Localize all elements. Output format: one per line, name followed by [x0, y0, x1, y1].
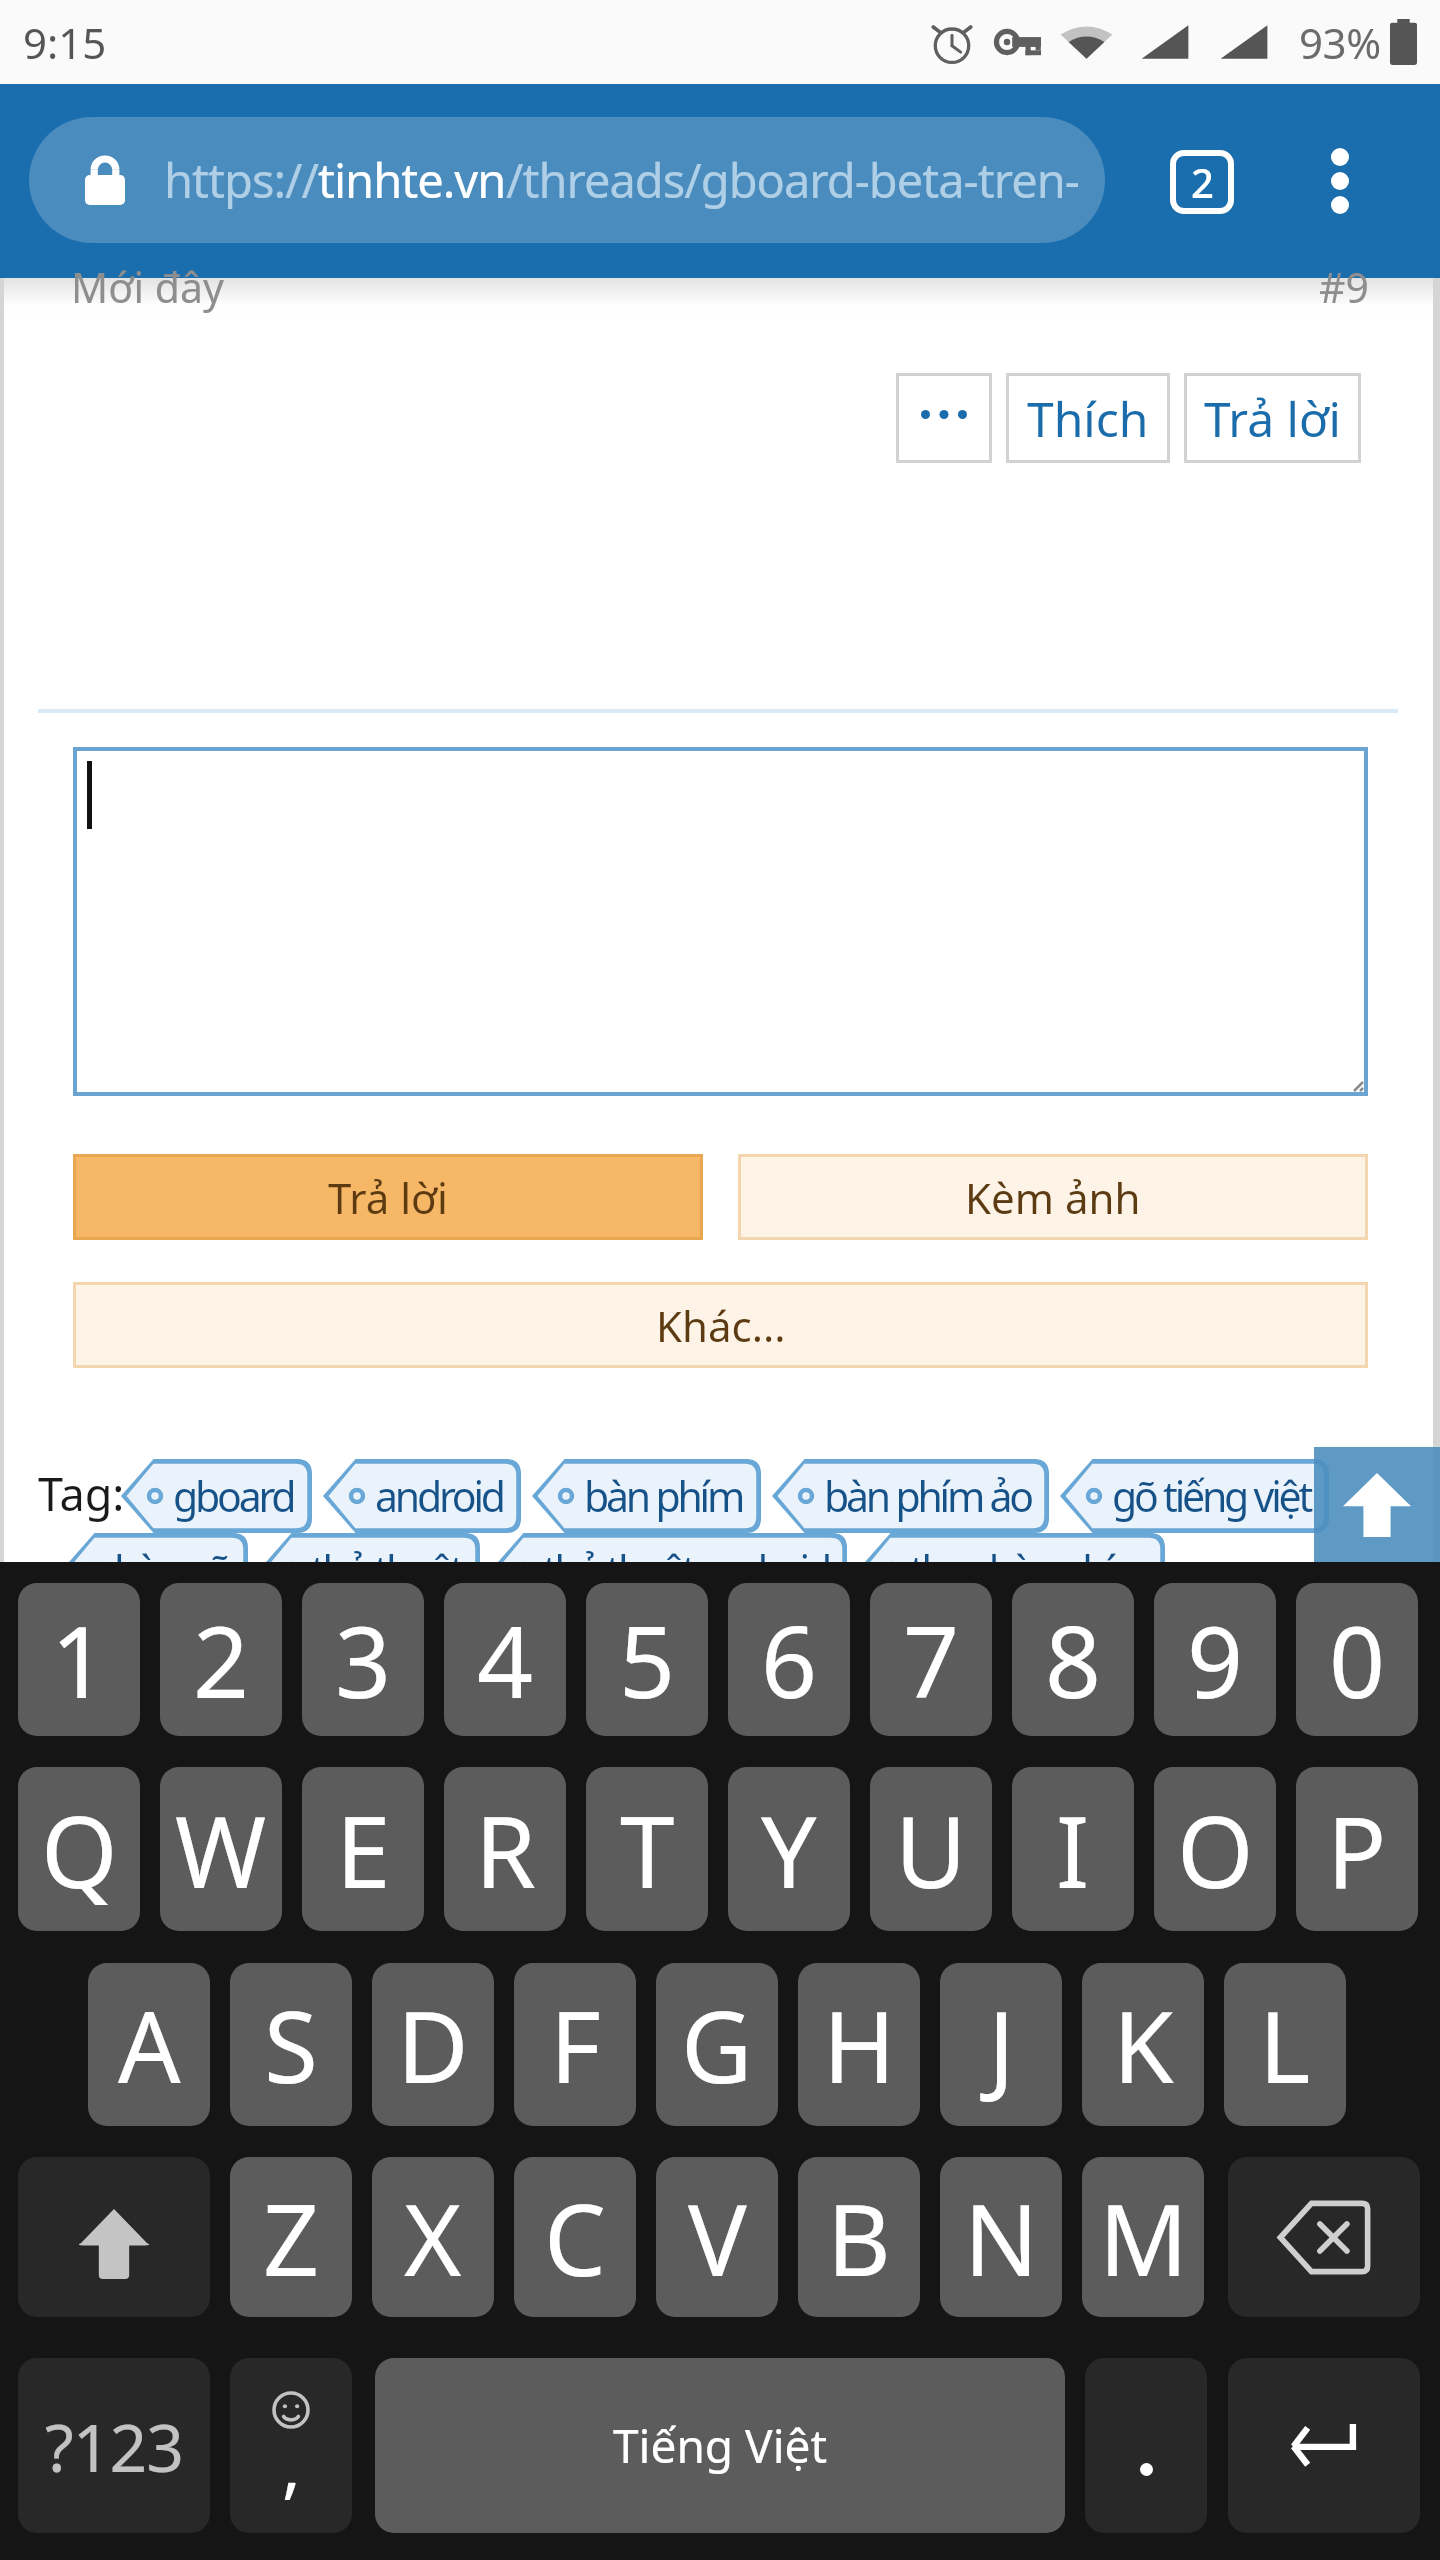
button[interactable]: L — [1224, 1963, 1346, 2126]
button[interactable]: K — [1082, 1963, 1204, 2126]
button[interactable]: Tabs, 2 open — [1154, 134, 1250, 230]
button[interactable]: B — [798, 2157, 920, 2317]
staticText: 7 — [903, 1593, 960, 1726]
button[interactable]: N — [940, 2157, 1062, 2317]
staticText: T — [620, 1783, 675, 1916]
button[interactable]: bàn phím — [532, 1459, 761, 1533]
button[interactable]: 2 — [160, 1583, 282, 1736]
staticText: ?123 — [45, 2401, 183, 2491]
staticText: P — [1327, 1783, 1387, 1916]
button[interactable]: Shift — [18, 2157, 210, 2317]
button[interactable]: Period — [1085, 2358, 1207, 2533]
staticText: V — [688, 2171, 747, 2304]
button[interactable]: 6 — [728, 1583, 850, 1736]
other: Backspace — [1277, 2200, 1371, 2275]
button[interactable]: H — [798, 1963, 920, 2126]
button[interactable]: thủ thuật — [259, 1533, 480, 1607]
button[interactable]: J — [940, 1963, 1062, 2126]
button[interactable]: Scroll to top — [1314, 1447, 1440, 1562]
button[interactable]: A — [88, 1963, 210, 2126]
staticText: 9 — [1187, 1593, 1244, 1726]
button[interactable]: 8 — [1012, 1583, 1134, 1736]
button[interactable]: D — [372, 1963, 494, 2126]
staticText: 8 — [1045, 1593, 1102, 1726]
button[interactable]: Y — [728, 1767, 850, 1931]
button[interactable]: S — [230, 1963, 352, 2126]
button[interactable]: gboard — [121, 1459, 312, 1533]
button[interactable]: Emoji and comma — [230, 2358, 352, 2533]
button[interactable]: bàn gõ — [62, 1533, 248, 1607]
button[interactable]: 1 — [18, 1583, 140, 1736]
staticText: U — [895, 1783, 967, 1916]
button[interactable]: Tiếng Việt — [375, 2358, 1065, 2533]
staticText: thay bàn phím — [910, 1542, 1147, 1598]
button[interactable]: 5 — [586, 1583, 708, 1736]
button[interactable]: V — [656, 2157, 778, 2317]
button[interactable]: Backspace — [1228, 2157, 1420, 2317]
staticText: R — [475, 1783, 536, 1916]
staticText: bàn phím — [584, 1468, 743, 1524]
staticText: N — [964, 2171, 1039, 2304]
button[interactable]: Q — [18, 1767, 140, 1931]
button[interactable]: thủ thuật android — [491, 1533, 847, 1607]
button[interactable] — [73, 747, 1368, 1096]
staticText: 1 — [51, 1593, 108, 1726]
staticText: 6 — [761, 1593, 818, 1726]
button[interactable]: gõ tiếng việt — [1060, 1459, 1329, 1533]
staticText: B — [827, 2171, 891, 2304]
button[interactable]: X — [372, 2157, 494, 2317]
button[interactable]: P — [1296, 1767, 1418, 1931]
button[interactable]: F — [514, 1963, 636, 2126]
button[interactable]: W — [160, 1767, 282, 1931]
button[interactable]: https:// — [29, 117, 1105, 243]
button[interactable]: Z — [230, 2157, 352, 2317]
staticText: G — [681, 1978, 753, 2111]
staticText: Tiếng Việt — [613, 2414, 828, 2477]
button[interactable]: bàn phím ảo — [772, 1459, 1049, 1533]
staticText: H — [823, 1978, 896, 2111]
button[interactable]: T — [586, 1767, 708, 1931]
staticText: /threads/gboard-beta-tren- — [506, 148, 1079, 212]
staticText: Z — [263, 2171, 320, 2304]
staticText: 5 — [619, 1593, 676, 1726]
staticText: thủ thuật android — [543, 1542, 829, 1598]
button[interactable]: More actions — [896, 373, 992, 463]
button[interactable]: Thích — [1006, 373, 1170, 463]
staticText: Tag: — [38, 1463, 125, 1524]
button[interactable]: Khác... — [73, 1282, 1368, 1368]
staticText: J — [988, 1978, 1015, 2111]
button[interactable]: I — [1012, 1767, 1134, 1931]
button[interactable]: M — [1082, 2157, 1204, 2317]
button[interactable]: 0 — [1296, 1583, 1418, 1736]
button[interactable]: More options — [1292, 133, 1388, 229]
button[interactable]: C — [514, 2157, 636, 2317]
button[interactable]: 9 — [1154, 1583, 1276, 1736]
button[interactable]: G — [656, 1963, 778, 2126]
button[interactable]: Enter — [1228, 2358, 1420, 2533]
button[interactable]: 7 — [870, 1583, 992, 1736]
button[interactable]: 4 — [444, 1583, 566, 1736]
button[interactable]: O — [1154, 1767, 1276, 1931]
staticText: S — [264, 1978, 318, 2111]
staticText: E — [336, 1783, 391, 1916]
button[interactable]: U — [870, 1767, 992, 1931]
staticText: Trả lời — [328, 1169, 448, 1226]
button[interactable]: R — [444, 1767, 566, 1931]
staticText: X — [404, 2171, 462, 2304]
button[interactable]: E — [302, 1767, 424, 1931]
button[interactable]: 3 — [302, 1583, 424, 1736]
button[interactable]: android — [323, 1459, 521, 1533]
button[interactable]: Trả lời — [1184, 373, 1361, 463]
staticText: 2 — [193, 1593, 250, 1726]
button[interactable]: Kèm ảnh — [738, 1154, 1368, 1240]
button[interactable]: ?123 — [18, 2358, 210, 2533]
staticText: K — [1113, 1978, 1174, 2111]
other: Enter — [1290, 2424, 1358, 2468]
staticText: I — [1056, 1783, 1090, 1916]
staticText: L — [1259, 1978, 1311, 2111]
button[interactable]: Trả lời — [73, 1154, 703, 1240]
staticText: Trả lời — [1204, 386, 1341, 451]
staticText: C — [544, 2171, 606, 2304]
staticText: thủ thuật — [311, 1542, 462, 1598]
button[interactable]: thay bàn phím — [858, 1533, 1165, 1607]
